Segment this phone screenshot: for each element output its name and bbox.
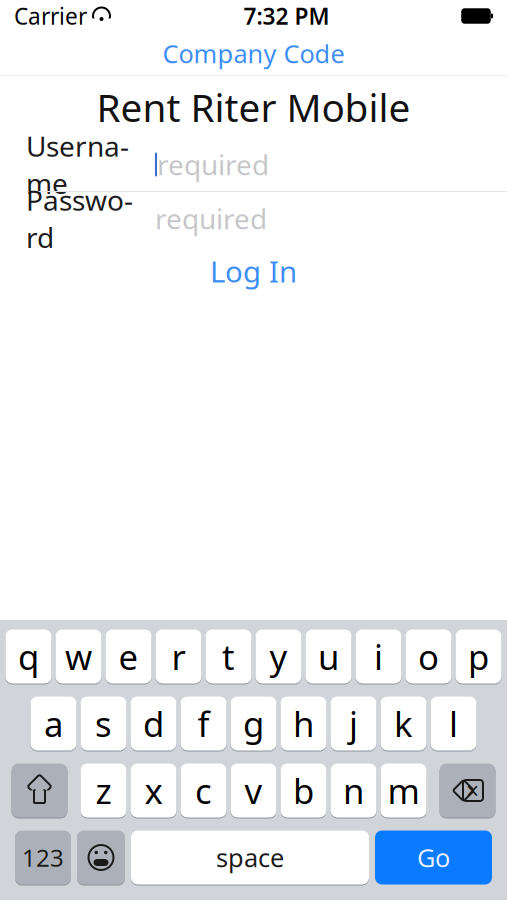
button[interactable]: Log In: [0, 245, 507, 297]
button[interactable]: l: [430, 696, 476, 751]
button[interactable]: f: [180, 696, 226, 751]
staticText: j: [349, 700, 358, 746]
button[interactable]: g: [230, 696, 276, 751]
staticText: x: [144, 767, 162, 813]
button[interactable]: 123: [15, 830, 71, 885]
button[interactable]: x: [130, 763, 176, 818]
staticText: w: [65, 633, 92, 679]
button[interactable]: Company Code: [0, 32, 507, 75]
staticText: t: [222, 633, 235, 679]
staticText: m: [387, 767, 419, 813]
button[interactable]: Delete: [439, 763, 495, 818]
staticText: l: [449, 700, 458, 746]
button[interactable]: i: [355, 629, 401, 684]
staticText: ×: [466, 775, 479, 805]
staticText: i: [374, 633, 383, 679]
staticText: z: [95, 767, 111, 813]
staticText: Password: [26, 181, 133, 256]
button[interactable]: b: [280, 763, 326, 818]
button[interactable]: Emoji: [77, 830, 125, 885]
staticText: h: [293, 700, 314, 746]
staticText: Log In: [210, 251, 297, 290]
staticText: p: [468, 633, 489, 679]
button[interactable]: e: [105, 629, 151, 684]
button[interactable]: d: [130, 696, 176, 751]
button[interactable]: Shift: [11, 763, 67, 818]
staticText: Go: [417, 841, 450, 874]
staticText: f: [197, 700, 209, 746]
button[interactable]: n: [330, 763, 376, 818]
button[interactable]: space: [131, 830, 369, 885]
button[interactable]: j: [330, 696, 376, 751]
button[interactable]: v: [230, 763, 276, 818]
staticText: o: [418, 633, 439, 679]
button[interactable]: k: [380, 696, 426, 751]
button[interactable]: h: [280, 696, 326, 751]
button[interactable]: t: [205, 629, 251, 684]
staticText: s: [95, 700, 112, 746]
staticText: k: [394, 700, 413, 746]
staticText: 123: [22, 842, 64, 873]
button[interactable]: a: [30, 696, 76, 751]
staticText: y: [269, 633, 287, 679]
staticText: d: [143, 700, 164, 746]
staticText: required: [155, 200, 267, 237]
staticText: u: [318, 633, 339, 679]
staticText: Carrier: [14, 1, 87, 31]
staticText: Rent Riter Mobile: [96, 81, 410, 133]
button[interactable]: r: [155, 629, 201, 684]
staticText: a: [44, 700, 63, 746]
staticText: e: [118, 633, 138, 679]
button[interactable]: c: [180, 763, 226, 818]
button[interactable]: p: [455, 629, 501, 684]
staticText: required: [157, 146, 269, 183]
button[interactable]: w: [55, 629, 101, 684]
button[interactable]: s: [80, 696, 126, 751]
staticText: r: [171, 633, 185, 679]
button[interactable]: z: [80, 763, 126, 818]
staticText: Username: [26, 127, 129, 202]
staticText: 7:32 PM: [243, 1, 329, 31]
staticText: Company Code: [162, 37, 344, 70]
button[interactable]: Go: [375, 830, 492, 885]
button[interactable]: m: [380, 763, 426, 818]
staticText: q: [18, 633, 39, 679]
button[interactable]: q: [5, 629, 51, 684]
button[interactable]: o: [405, 629, 451, 684]
staticText: n: [343, 767, 364, 813]
button[interactable]: u: [305, 629, 351, 684]
staticText: b: [293, 767, 314, 813]
staticText: v: [244, 767, 262, 813]
staticText: c: [195, 767, 212, 813]
button[interactable]: y: [255, 629, 301, 684]
staticText: g: [243, 700, 264, 746]
staticText: space: [216, 841, 284, 874]
